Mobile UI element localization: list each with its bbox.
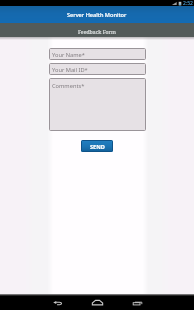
button[interactable]: SEND — [81, 140, 113, 152]
staticText: SEND — [90, 143, 105, 151]
button[interactable]: Comments* — [49, 78, 146, 131]
button[interactable]: Back — [50, 295, 64, 310]
staticText: Server Health Monitor — [67, 11, 127, 19]
button[interactable]: Recent apps — [130, 295, 144, 310]
staticText: Feedback Form — [78, 28, 116, 35]
staticText: Comments* — [52, 82, 85, 90]
staticText: Your Name* — [52, 51, 85, 59]
button[interactable]: Your Mail ID* — [49, 63, 146, 75]
staticText: 2:52 — [183, 0, 193, 6]
button[interactable]: Your Name* — [49, 48, 146, 60]
button[interactable]: Home — [90, 295, 104, 310]
staticText: Your Mail ID* — [52, 66, 88, 74]
